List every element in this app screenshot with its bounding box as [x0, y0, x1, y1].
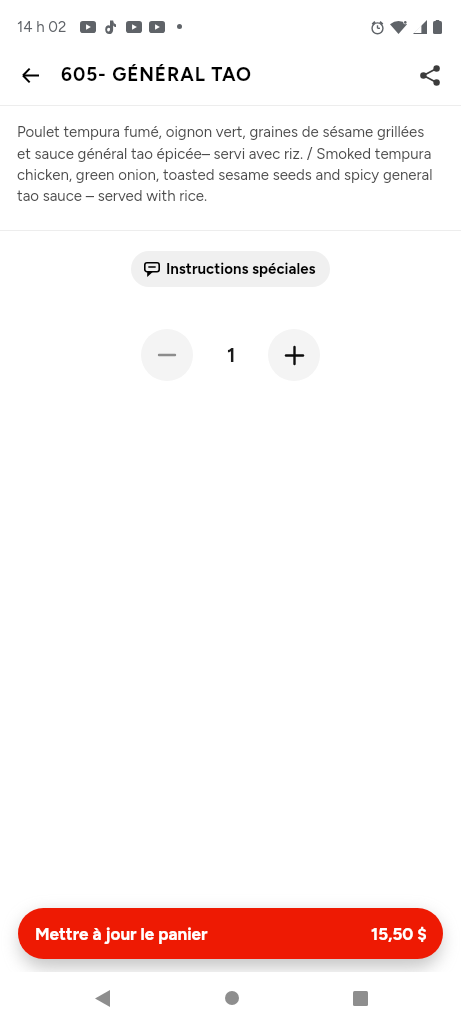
button[interactable]: Back: [80, 976, 124, 1020]
staticText: 15,50 $: [371, 924, 427, 944]
staticText: Mettre à jour le panier: [35, 924, 208, 944]
other: Wi-Fi: [390, 20, 407, 34]
other: Alarm: [371, 19, 384, 34]
button[interactable]: Home: [210, 976, 254, 1020]
button[interactable]: Mettre à jour le panier: [18, 908, 443, 959]
staticText: 14 h 02: [17, 18, 67, 36]
button[interactable]: Recent apps: [338, 976, 382, 1020]
button[interactable]: Instructions spéciales: [131, 251, 330, 287]
staticText: 1: [227, 343, 236, 367]
other: Battery: [433, 20, 442, 34]
button[interactable]: Back: [8, 53, 52, 97]
button[interactable]: Share: [408, 53, 452, 97]
button[interactable]: Increase quantity: [268, 329, 320, 381]
other: Signal: [413, 20, 427, 34]
staticText: Poulet tempura fumé, oignon vert, graine…: [17, 123, 435, 204]
staticText: Instructions spéciales: [166, 260, 316, 278]
staticText: 605- GÉNÉRAL TAO: [61, 63, 252, 86]
button[interactable]: Decrease quantity: [141, 329, 193, 381]
